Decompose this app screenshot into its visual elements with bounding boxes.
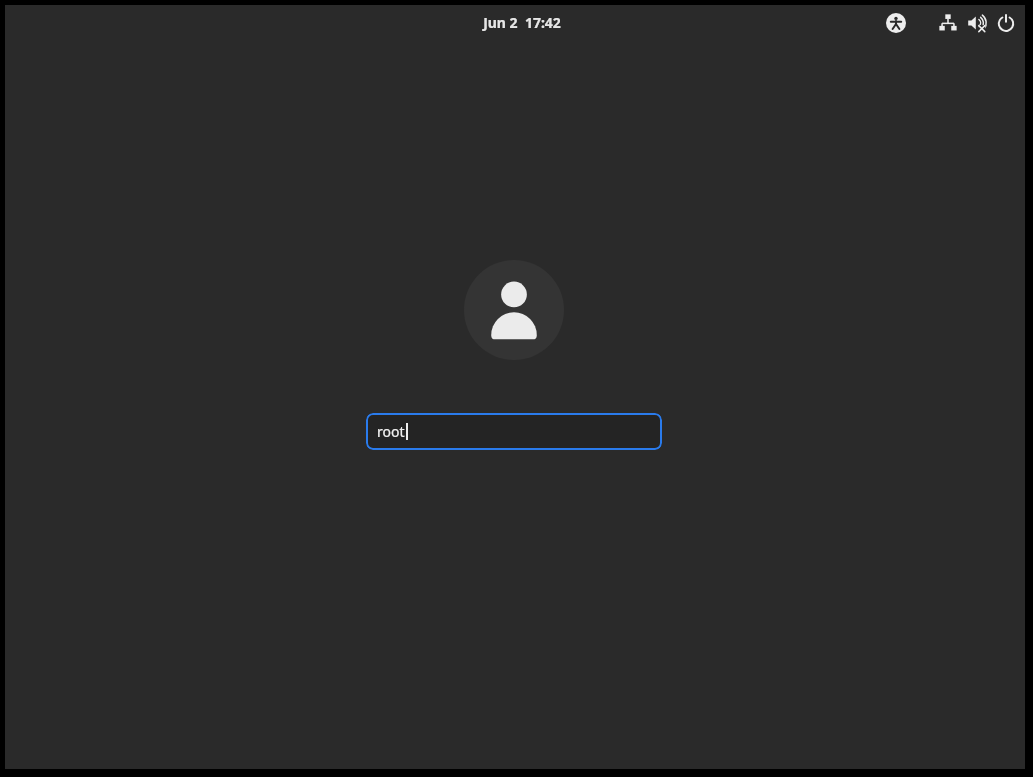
button[interactable]: Network	[935, 10, 961, 36]
button[interactable]: root	[366, 413, 662, 450]
button[interactable]: Power	[993, 10, 1019, 36]
staticText: root	[377, 422, 405, 441]
staticText: Jun 2 17:42	[483, 13, 561, 32]
button[interactable]: User avatar	[464, 260, 564, 360]
button[interactable]: Volume muted	[964, 10, 990, 36]
button[interactable]: Jun 2 17:42	[475, 11, 569, 34]
button[interactable]: Accessibility	[883, 10, 909, 36]
